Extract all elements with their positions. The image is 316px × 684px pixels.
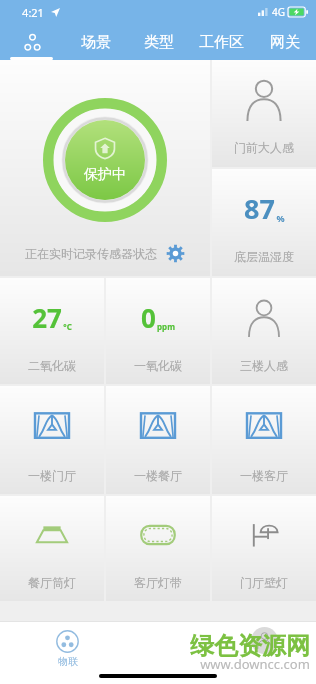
staticText: 27 [32, 300, 62, 335]
staticText: 保护中 [84, 166, 126, 184]
staticText: °C [63, 321, 72, 332]
staticText: 正在实时记录传感器状态 [25, 246, 157, 261]
button[interactable]: 餐厅筒灯 [0, 496, 104, 601]
staticText: 餐厅筒灯 [28, 575, 76, 590]
staticText: 物联 [58, 655, 78, 668]
button[interactable]: 0 [106, 278, 210, 384]
staticText: 0 [141, 300, 156, 335]
staticText: 一楼餐厅 [134, 468, 182, 483]
staticText: 二氧化碳 [28, 358, 76, 373]
staticText: 场景 [81, 33, 111, 52]
button[interactable]: 三楼人感 [212, 278, 316, 384]
staticText: 门厅壁灯 [240, 575, 288, 590]
staticText: 4:21 [22, 5, 44, 20]
button[interactable]: 一楼门厅 [0, 386, 104, 494]
staticText: 工作区 [199, 33, 244, 52]
button[interactable]: 保护中 [0, 60, 210, 276]
button[interactable]: 类型 [127, 24, 190, 60]
staticText: 一楼门厅 [28, 468, 76, 483]
button[interactable]: 门前大人感 [212, 60, 316, 167]
button[interactable]: 一楼客厅 [212, 386, 316, 494]
button[interactable]: 设置 [166, 244, 185, 263]
staticText: www.downcc.com [200, 655, 310, 673]
staticText: 客厅灯带 [134, 575, 182, 590]
staticText: 底层温湿度 [234, 249, 294, 264]
staticText: 类型 [144, 33, 174, 52]
staticText: % [276, 212, 285, 224]
button[interactable]: 网关 [253, 24, 316, 60]
staticText: 门前大人感 [234, 140, 294, 155]
button[interactable]: 门厅壁灯 [212, 496, 316, 601]
button[interactable]: 客厅灯带 [106, 496, 210, 601]
button[interactable]: 27 [0, 278, 104, 384]
staticText: 一氧化碳 [134, 358, 182, 373]
button[interactable]: 群组 [0, 24, 64, 60]
staticText: ppm [157, 321, 175, 332]
staticText: 4G [272, 5, 285, 19]
staticText: 三楼人感 [240, 358, 288, 373]
button[interactable]: 物联 [56, 630, 79, 668]
staticText: 87 [244, 190, 275, 227]
button[interactable]: 一楼餐厅 [106, 386, 210, 494]
button[interactable]: 工作区 [190, 24, 253, 60]
button[interactable]: 87 [212, 169, 316, 276]
staticText: 一楼客厅 [240, 468, 288, 483]
button[interactable]: 场景 [64, 24, 127, 60]
staticText: 绿色资源网 [190, 631, 310, 661]
staticText: 网关 [270, 33, 300, 52]
